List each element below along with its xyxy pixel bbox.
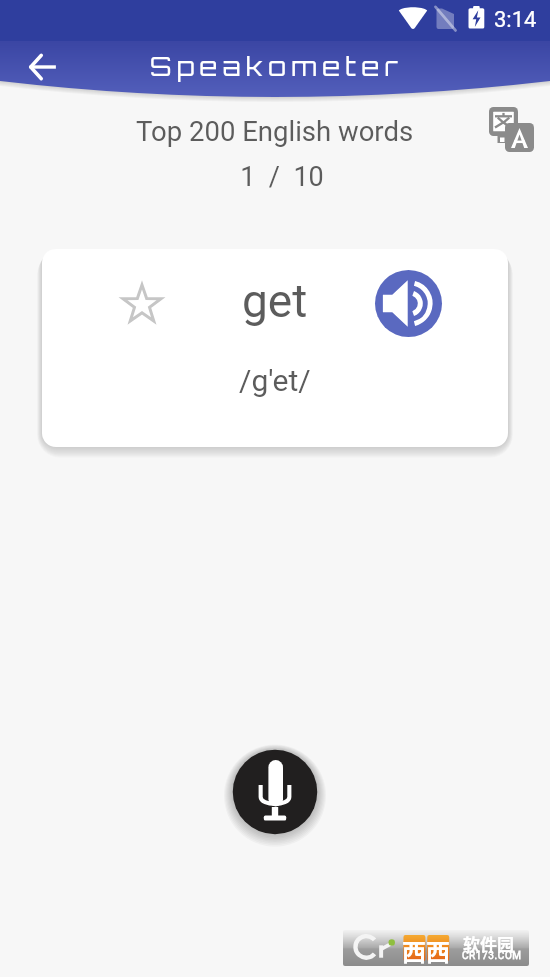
staticText: CR173.COM	[462, 950, 522, 962]
staticText: Speakometer	[150, 50, 404, 83]
button[interactable]: Record	[227, 744, 323, 840]
button[interactable]: Favourite	[119, 281, 165, 327]
button[interactable]: Translate	[486, 106, 536, 142]
staticText: Top 200 English words	[136, 115, 414, 147]
staticText: get	[242, 274, 308, 328]
button[interactable]: Favourite	[42, 249, 508, 447]
staticText: 西西	[402, 933, 450, 968]
staticText: 1 / 10	[7, 161, 550, 193]
staticText: 3:14	[494, 7, 537, 33]
staticText: 软件园	[463, 931, 514, 956]
button[interactable]: Back	[19, 43, 67, 91]
staticText: /g'et/	[239, 363, 311, 398]
button[interactable]: Play pronunciation	[374, 269, 442, 337]
